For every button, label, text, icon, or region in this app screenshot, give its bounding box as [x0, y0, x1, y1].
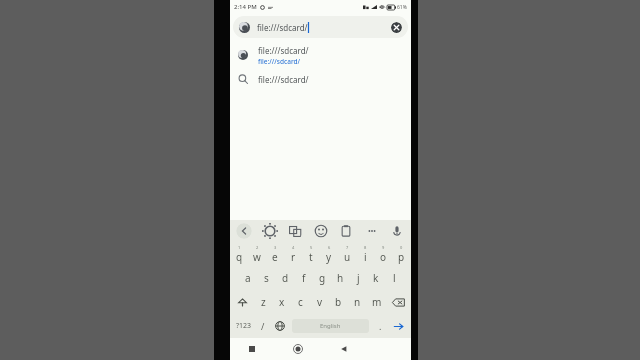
- staticText: i: [364, 250, 367, 264]
- button[interactable]: g: [313, 266, 331, 290]
- button[interactable]: m: [367, 290, 386, 314]
- staticText: q: [236, 250, 243, 264]
- button[interactable]: b: [329, 290, 348, 314]
- staticText: u: [344, 250, 351, 264]
- button[interactable]: j: [349, 266, 367, 290]
- button[interactable]: 0: [392, 242, 410, 266]
- staticText: w: [253, 250, 261, 264]
- button[interactable]: 9: [374, 242, 392, 266]
- button[interactable]: x: [272, 290, 291, 314]
- staticText: t: [309, 250, 313, 264]
- button[interactable]: z: [254, 290, 272, 314]
- button[interactable]: h: [331, 266, 349, 290]
- button[interactable]: k: [367, 266, 385, 290]
- staticText: 5: [310, 245, 313, 250]
- button[interactable]: Back: [236, 223, 252, 239]
- button[interactable]: Home: [286, 338, 310, 360]
- button[interactable]: file:///sdcard/: [233, 16, 408, 38]
- staticText: English: [320, 322, 341, 330]
- staticText: file:///sdcard/: [258, 57, 301, 66]
- staticText: 61%: [397, 4, 407, 11]
- button[interactable]: a: [238, 266, 257, 290]
- staticText: b: [335, 295, 342, 309]
- staticText: o: [380, 250, 387, 264]
- staticText: l: [393, 271, 396, 285]
- button[interactable]: .: [372, 314, 388, 338]
- staticText: file:///sdcard/: [257, 22, 308, 33]
- staticText: r: [291, 250, 296, 264]
- staticText: f: [302, 271, 306, 285]
- button[interactable]: d: [276, 266, 295, 290]
- staticText: 0: [400, 245, 403, 250]
- button[interactable]: Clipboard: [338, 223, 354, 239]
- staticText: 6: [328, 245, 331, 250]
- staticText: file:///sdcard/: [258, 45, 309, 56]
- button[interactable]: Go: [388, 314, 408, 338]
- staticText: k: [373, 271, 379, 285]
- button[interactable]: English: [292, 319, 369, 333]
- staticText: e: [272, 250, 278, 264]
- button[interactable]: n: [348, 290, 367, 314]
- staticText: g: [319, 271, 326, 285]
- button[interactable]: c: [291, 290, 310, 314]
- button[interactable]: Settings: [262, 223, 278, 239]
- staticText: x: [279, 295, 285, 309]
- staticText: m: [372, 295, 382, 309]
- button[interactable]: 3: [266, 242, 284, 266]
- button[interactable]: 5: [302, 242, 320, 266]
- staticText: d: [282, 271, 289, 285]
- button[interactable]: Back: [332, 338, 356, 360]
- staticText: ?123: [236, 321, 252, 331]
- staticText: s: [264, 271, 269, 285]
- button[interactable]: More options: [364, 223, 380, 239]
- staticText: .: [379, 320, 382, 332]
- button[interactable]: 6: [320, 242, 338, 266]
- button[interactable]: s: [257, 266, 276, 290]
- staticText: 8: [364, 245, 367, 250]
- button[interactable]: Change language: [271, 314, 289, 338]
- button[interactable]: /: [255, 314, 271, 338]
- staticText: c: [298, 295, 303, 309]
- button[interactable]: Backspace: [386, 290, 410, 314]
- staticText: 3: [274, 245, 277, 250]
- staticText: 7: [346, 245, 349, 250]
- staticText: file:///sdcard/: [258, 74, 309, 85]
- button[interactable]: Translate: [287, 223, 303, 239]
- staticText: a: [245, 271, 251, 285]
- button[interactable]: Shift: [231, 290, 254, 314]
- staticText: y: [326, 250, 332, 264]
- button[interactable]: 2: [248, 242, 266, 266]
- staticText: p: [398, 250, 405, 264]
- button[interactable]: 7: [338, 242, 356, 266]
- staticText: z: [261, 295, 266, 309]
- staticText: j: [357, 271, 360, 285]
- button[interactable]: Voice input: [389, 223, 405, 239]
- staticText: 1: [238, 245, 241, 250]
- staticText: /: [261, 320, 265, 332]
- button[interactable]: 8: [356, 242, 374, 266]
- staticText: 2:14 PM: [234, 3, 257, 11]
- staticText: 9: [382, 245, 385, 250]
- button[interactable]: Clear: [391, 22, 402, 33]
- button[interactable]: Recents: [240, 338, 264, 360]
- button[interactable]: Sticker: [313, 223, 329, 239]
- staticText: h: [337, 271, 344, 285]
- button[interactable]: f: [295, 266, 313, 290]
- button[interactable]: 4: [284, 242, 302, 266]
- button[interactable]: l: [385, 266, 403, 290]
- staticText: 4: [292, 245, 295, 250]
- button[interactable]: file:///sdcard/: [230, 68, 411, 90]
- staticText: 2: [256, 245, 259, 250]
- button[interactable]: ?123: [233, 314, 255, 338]
- button[interactable]: 1: [231, 242, 248, 266]
- staticText: n: [354, 295, 361, 309]
- button[interactable]: v: [310, 290, 329, 314]
- staticText: v: [317, 295, 323, 309]
- button[interactable]: file:///sdcard/: [230, 42, 411, 68]
